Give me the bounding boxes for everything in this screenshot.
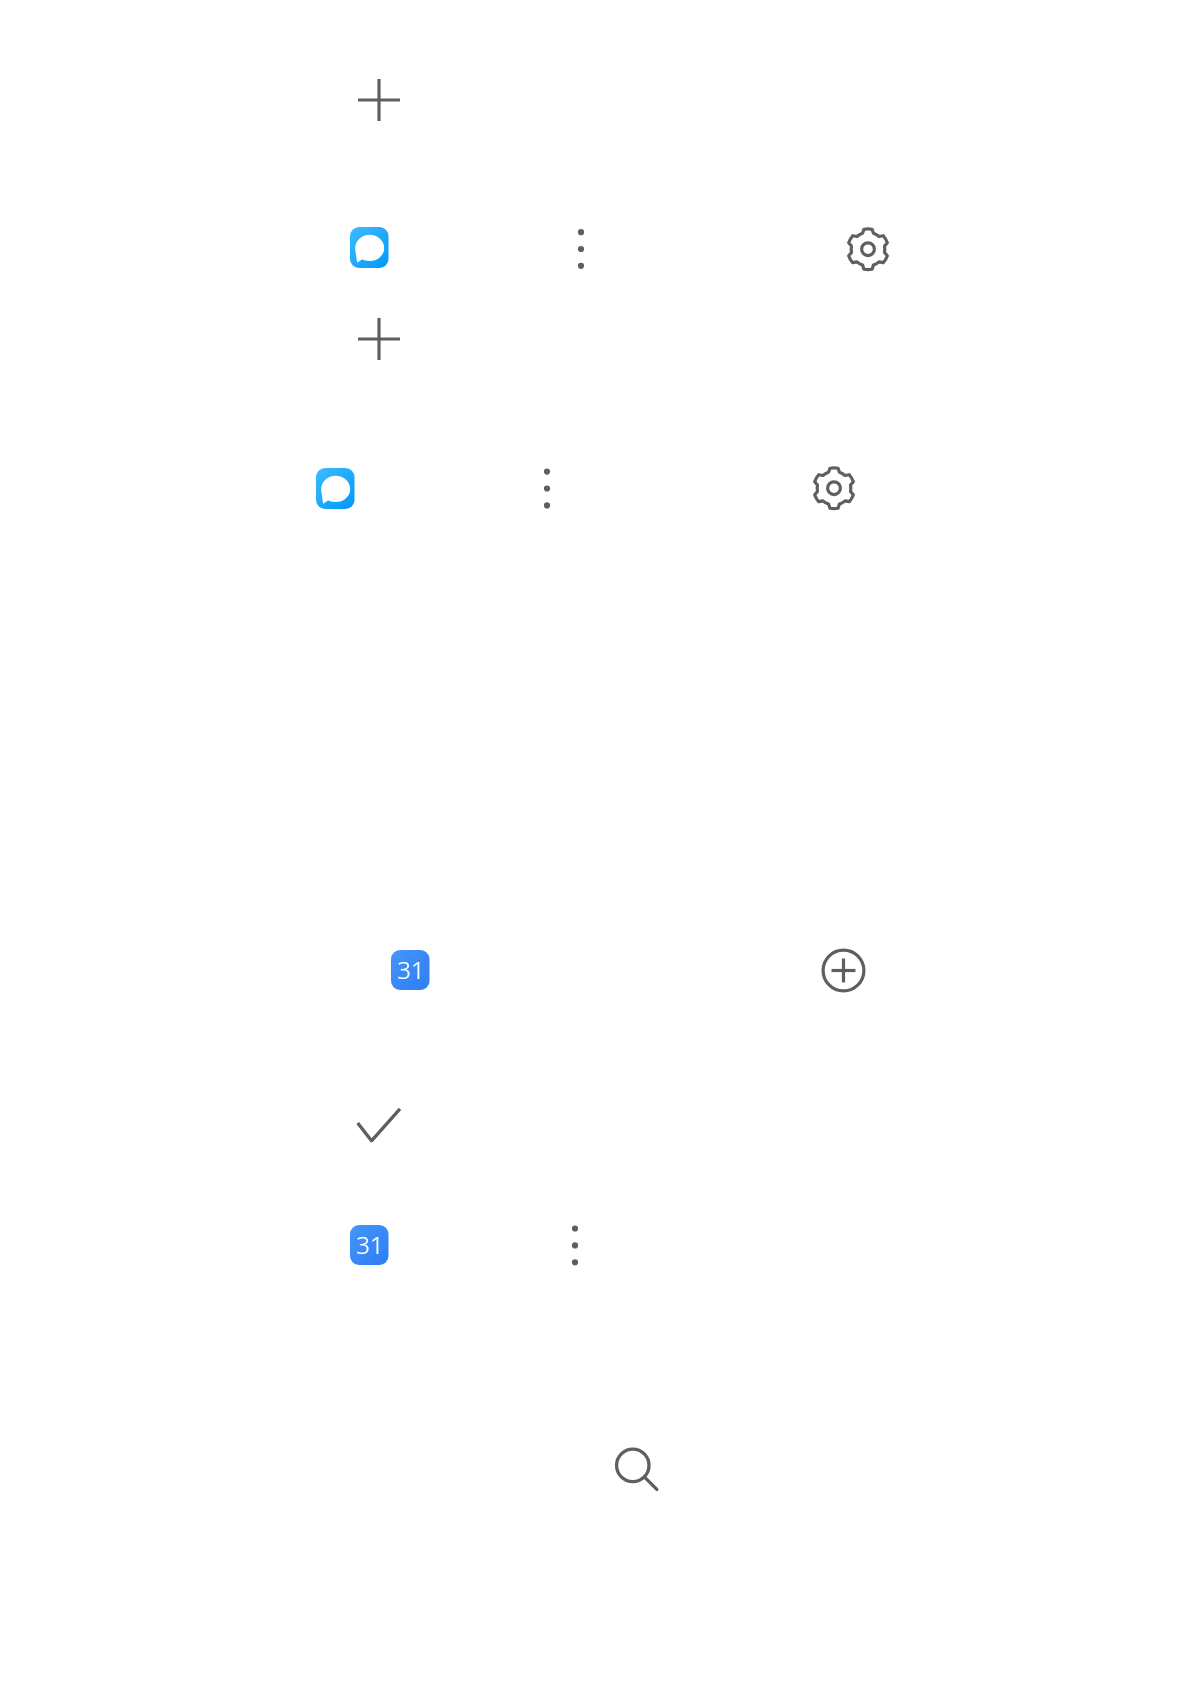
button[interactable]: Search	[612, 1444, 662, 1494]
button[interactable]: More options	[567, 222, 595, 276]
button[interactable]: Calendar	[391, 950, 430, 991]
button[interactable]: Messages	[350, 227, 390, 267]
button[interactable]: Add	[357, 78, 401, 122]
button[interactable]: Done	[353, 1103, 405, 1147]
button[interactable]: Add	[357, 317, 401, 361]
button[interactable]: More options	[561, 1218, 589, 1272]
staticText: 31	[397, 953, 425, 986]
button[interactable]: Settings	[812, 466, 856, 510]
button[interactable]: Calendar	[350, 1225, 389, 1266]
button[interactable]: Add	[820, 947, 867, 994]
button[interactable]: Settings	[846, 227, 890, 271]
button[interactable]: Messages	[316, 468, 356, 508]
staticText: 31	[356, 1228, 384, 1261]
button[interactable]: More options	[533, 461, 561, 515]
